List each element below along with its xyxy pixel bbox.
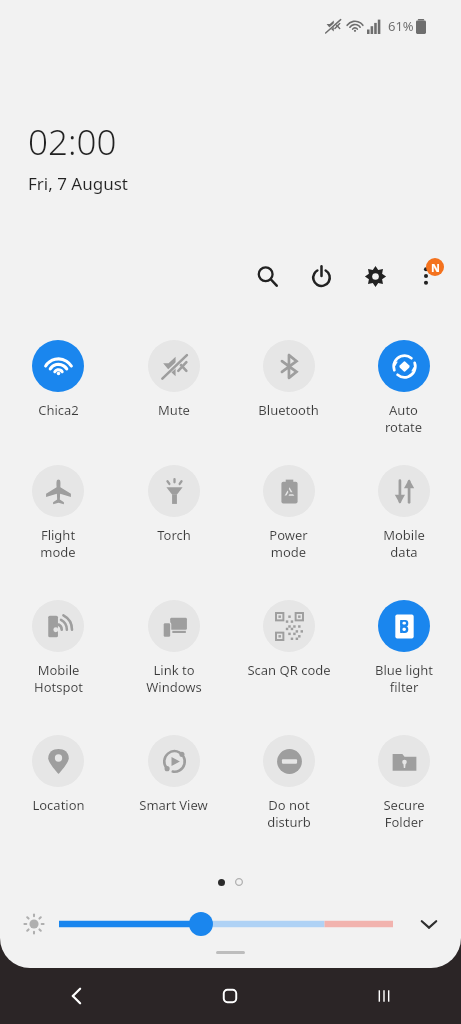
staticText: Do not disturb <box>267 796 311 831</box>
button[interactable]: Recent apps <box>307 968 461 1024</box>
staticText: Mobile data <box>383 526 425 561</box>
button[interactable]: Auto rotate <box>346 340 461 465</box>
button[interactable]: Power mode <box>231 465 346 600</box>
button[interactable]: Settings <box>355 256 395 296</box>
staticText: Scan QR code <box>247 661 331 679</box>
button[interactable]: Mute <box>116 340 231 465</box>
staticText: Blue light filter <box>375 661 433 696</box>
staticText: Location <box>32 796 85 814</box>
button[interactable]: Location <box>0 735 116 870</box>
staticText: Flight mode <box>40 526 76 561</box>
button[interactable]: Search <box>247 256 287 296</box>
button[interactable]: More options <box>405 255 447 297</box>
staticText: Mute <box>158 401 190 419</box>
button[interactable]: Do not disturb <box>231 735 346 870</box>
staticText: Smart View <box>139 796 208 814</box>
button[interactable]: Expand brightness settings <box>409 904 449 944</box>
staticText: Power mode <box>269 526 308 561</box>
button[interactable]: Flight mode <box>0 465 116 600</box>
staticText: Auto rotate <box>385 401 422 436</box>
staticText: 61% <box>388 17 414 35</box>
button[interactable]: Chica2 <box>0 340 116 465</box>
staticText: Torch <box>157 526 191 544</box>
staticText: Bluetooth <box>258 401 319 419</box>
staticText: 02:00 <box>28 118 117 166</box>
button[interactable]: Secure Folder <box>346 735 461 870</box>
staticText: Chica2 <box>38 401 79 419</box>
button[interactable]: Mobile data <box>346 465 461 600</box>
staticText: Secure Folder <box>383 796 425 831</box>
button[interactable]: Back <box>0 968 153 1024</box>
button[interactable]: Blue light filter <box>346 600 461 735</box>
button[interactable]: Power off <box>301 256 341 296</box>
button[interactable]: Bluetooth <box>231 340 346 465</box>
staticText: N <box>431 260 440 275</box>
button[interactable]: Mobile Hotspot <box>0 600 116 735</box>
button[interactable]: Home <box>153 968 307 1024</box>
button[interactable]: Smart View <box>116 735 231 870</box>
button[interactable]: Torch <box>116 465 231 600</box>
button[interactable]: Scan QR code <box>231 600 346 735</box>
button[interactable]: Link to Windows <box>116 600 231 735</box>
staticText: Fri, 7 August <box>28 172 128 195</box>
staticText: Link to Windows <box>146 661 202 696</box>
staticText: Mobile Hotspot <box>34 661 83 696</box>
